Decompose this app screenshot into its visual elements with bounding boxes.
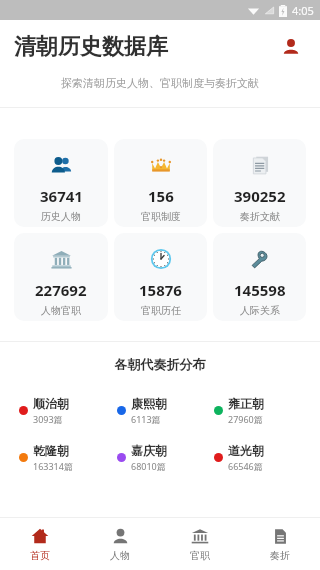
staticText: 康熙朝 — [131, 396, 167, 411]
staticText: 156 — [148, 186, 174, 206]
button[interactable]: 道光朝 — [209, 443, 306, 472]
staticText: 奏折文献 — [240, 210, 280, 223]
button[interactable]: 奏折 — [240, 518, 320, 570]
staticText: 68010篇 — [131, 460, 166, 472]
staticText: 人物 — [110, 549, 130, 562]
button[interactable]: 227692 — [14, 233, 108, 321]
staticText: 官职制度 — [141, 210, 181, 223]
button[interactable]: 390252 — [213, 139, 306, 227]
staticText: 4:05 — [292, 3, 314, 18]
button[interactable]: 雍正朝 — [209, 396, 306, 425]
button[interactable]: 康熙朝 — [112, 396, 209, 425]
staticText: 顺治朝 — [33, 396, 69, 411]
button[interactable]: 人物 — [80, 518, 160, 570]
staticText: 227692 — [35, 280, 87, 300]
staticText: 奏折 — [270, 549, 290, 562]
button[interactable]: 官职 — [160, 518, 240, 570]
staticText: 官职 — [190, 549, 210, 562]
button[interactable]: 顺治朝 — [14, 396, 112, 425]
staticText: 66546篇 — [228, 460, 263, 472]
button[interactable]: 156 — [114, 139, 207, 227]
staticText: 探索清朝历史人物、官职制度与奏折文献 — [0, 76, 320, 90]
staticText: 历史人物 — [41, 210, 81, 223]
button[interactable]: 15876 — [114, 233, 207, 321]
staticText: 390252 — [234, 186, 286, 206]
staticText: 人际关系 — [240, 304, 280, 317]
staticText: 清朝历史数据库 — [14, 33, 168, 61]
button[interactable]: 嘉庆朝 — [112, 443, 209, 472]
staticText: 3093篇 — [33, 413, 63, 425]
staticText: 人物官职 — [41, 304, 81, 317]
staticText: 145598 — [234, 280, 286, 300]
staticText: 乾隆朝 — [33, 443, 69, 458]
button[interactable]: 首页 — [0, 518, 80, 570]
staticText: 道光朝 — [228, 443, 264, 458]
staticText: 各朝代奏折分布 — [0, 356, 320, 372]
button[interactable]: Account — [276, 32, 306, 62]
button[interactable]: 36741 — [14, 139, 108, 227]
button[interactable]: 145598 — [213, 233, 306, 321]
staticText: 官职历任 — [141, 304, 181, 317]
staticText: 36741 — [40, 186, 83, 206]
staticText: 163314篇 — [33, 460, 73, 472]
staticText: 6113篇 — [131, 413, 161, 425]
button[interactable]: 乾隆朝 — [14, 443, 112, 472]
staticText: 15876 — [139, 280, 182, 300]
staticText: 雍正朝 — [228, 396, 264, 411]
staticText: 嘉庆朝 — [131, 443, 167, 458]
staticText: 27960篇 — [228, 413, 263, 425]
staticText: 首页 — [30, 549, 50, 562]
